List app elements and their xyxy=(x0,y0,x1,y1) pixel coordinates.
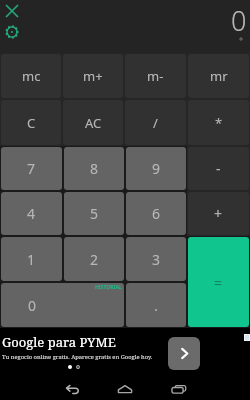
button[interactable]: / xyxy=(125,100,186,145)
staticText: C xyxy=(27,114,36,132)
button[interactable]: C xyxy=(1,100,61,145)
staticText: HISTORIAL xyxy=(95,284,122,291)
button[interactable]: Recent apps xyxy=(165,378,191,400)
staticText: 3 xyxy=(152,250,161,269)
button[interactable]: 6 xyxy=(126,192,186,235)
staticText: Tu negocio online gratis. Aparece gratis… xyxy=(2,353,153,361)
staticText: 1 xyxy=(27,250,36,269)
staticText: 9 xyxy=(152,159,161,178)
staticText: 4 xyxy=(27,204,36,223)
staticText: m+ xyxy=(83,67,103,85)
staticText: AC xyxy=(85,114,102,132)
button[interactable]: 3 xyxy=(126,237,186,281)
button[interactable]: 1 xyxy=(1,237,62,281)
button[interactable]: . xyxy=(126,283,186,327)
button[interactable]: m+ xyxy=(63,54,123,98)
staticText: / xyxy=(153,114,158,132)
staticText: mc xyxy=(22,67,41,85)
button[interactable]: mr xyxy=(188,54,249,98)
staticText: 2 xyxy=(90,250,99,269)
button[interactable]: - xyxy=(188,147,249,190)
button[interactable]: mc xyxy=(1,54,61,98)
button[interactable]: * xyxy=(188,100,249,145)
staticText: 7 xyxy=(27,159,36,178)
staticText: 0 xyxy=(231,2,247,39)
button[interactable]: Settings xyxy=(1,21,23,43)
staticText: 0 xyxy=(28,296,37,315)
button[interactable]: Ad choices xyxy=(244,334,250,341)
button[interactable]: + xyxy=(188,192,249,235)
button[interactable]: AC xyxy=(63,100,123,145)
staticText: + xyxy=(214,204,223,223)
staticText: m- xyxy=(147,67,164,85)
button[interactable]: 7 xyxy=(1,147,62,190)
staticText: = xyxy=(214,273,223,292)
button[interactable]: Back xyxy=(59,378,85,400)
staticText: * xyxy=(215,114,223,132)
button[interactable]: Next advertisement xyxy=(168,337,200,370)
staticText: . xyxy=(154,296,158,315)
staticText: 6 xyxy=(152,204,161,223)
button[interactable]: Close xyxy=(1,0,23,22)
staticText: 8 xyxy=(90,159,99,178)
button[interactable]: Home xyxy=(112,378,138,400)
button[interactable]: 9 xyxy=(126,147,186,190)
button[interactable]: 8 xyxy=(64,147,124,190)
button[interactable]: 5 xyxy=(64,192,124,235)
button[interactable]: 2 xyxy=(64,237,124,281)
button[interactable]: 0 xyxy=(1,283,124,327)
staticText: Google para PYME xyxy=(2,333,116,351)
staticText: 5 xyxy=(90,204,99,223)
staticText: - xyxy=(216,159,221,178)
button[interactable]: 4 xyxy=(1,192,62,235)
staticText: mr xyxy=(210,67,228,85)
button[interactable]: = xyxy=(188,237,249,327)
button[interactable]: m- xyxy=(125,54,186,98)
